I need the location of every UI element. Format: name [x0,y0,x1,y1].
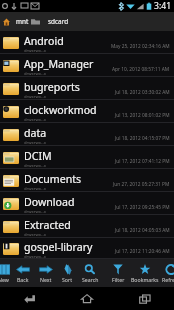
staticText: Search [82,276,99,283]
staticText: drwxrwx--x [24,140,46,146]
staticText: Documents [24,172,82,186]
staticText: sdcard [48,17,69,26]
button[interactable]: Extracted [0,215,174,238]
button[interactable]: gospel-library [0,238,174,259]
staticText: drwxrwx--x [24,48,46,54]
staticText: Jul 18, 2012 03:30:02 AM [115,89,170,96]
button[interactable]: New [0,259,13,287]
button[interactable]: Android [0,31,174,54]
staticText: Extracted [24,218,71,232]
staticText: Refresh [162,276,174,283]
staticText: Bookmarks [131,276,159,283]
staticText: drwxrwx--x [24,232,46,238]
staticText: mnt [16,17,29,26]
staticText: Apr 10, 2012 08:57:11 AM [112,66,170,73]
staticText: New [0,276,9,283]
staticText: Jun 27, 2012 05:27:31 PM [113,181,170,188]
staticText: Jul 17, 2012 11:20:46 AM [115,248,170,255]
staticText: Jul 18, 2012 04:15:07 PM [115,135,170,142]
staticText: drwxrwx--x [24,186,46,192]
staticText: gospel-library [24,240,93,254]
staticText: drwxrwx--x [24,94,46,100]
button[interactable]: Refresh [159,259,174,287]
button[interactable]: Bookmarks [130,259,160,287]
staticText: drwxrwx--x [24,163,46,169]
staticText: Back [17,276,29,283]
button[interactable]: Sort [57,259,78,287]
staticText: drwxrwx--x [24,71,46,77]
button[interactable]: Recents [116,287,174,310]
staticText: DCIM [24,149,52,163]
staticText: 3:41 [154,0,172,12]
staticText: Jul 17, 2012 09:25:45 PM [115,204,170,211]
button[interactable]: Documents [0,169,174,192]
staticText: data [24,126,47,140]
staticText: Sort [62,276,73,283]
button[interactable]: Home [58,287,116,310]
staticText: Next [40,276,52,283]
staticText: drwxrwx--x [24,254,46,259]
button[interactable]: DCIM [0,146,174,169]
button[interactable]: Download [0,192,174,215]
button[interactable]: mnt folder [31,18,40,25]
staticText: Filter [112,276,125,283]
button[interactable]: data [0,123,174,146]
staticText: Jul 18, 2012 04:05:03 AM [115,227,170,234]
staticText: clockworkmod [24,103,97,117]
button[interactable]: App_Manager [0,54,174,77]
staticText: App_Manager [24,57,94,71]
staticText: drwxrwx--x [24,209,46,215]
staticText: Jul 13, 2012 08:01:02 PM [115,112,170,119]
button[interactable]: Home [3,18,10,26]
staticText: Android [24,34,64,48]
button[interactable]: clockworkmod [0,100,174,123]
button[interactable]: Back [12,259,33,287]
staticText: Download [24,195,75,209]
staticText: May 25, 2012 02:34:16 AM [111,43,170,50]
button[interactable]: Back [0,287,58,310]
staticText: bugreports [24,80,80,94]
staticText: Jul 17, 2012 07:41:12 PM [115,158,170,165]
button[interactable]: Filter [107,259,129,287]
button[interactable]: bugreports [0,77,174,100]
button[interactable]: Next [35,259,56,287]
staticText: drwxrwx--x [24,117,46,123]
button[interactable]: Search [78,259,102,287]
